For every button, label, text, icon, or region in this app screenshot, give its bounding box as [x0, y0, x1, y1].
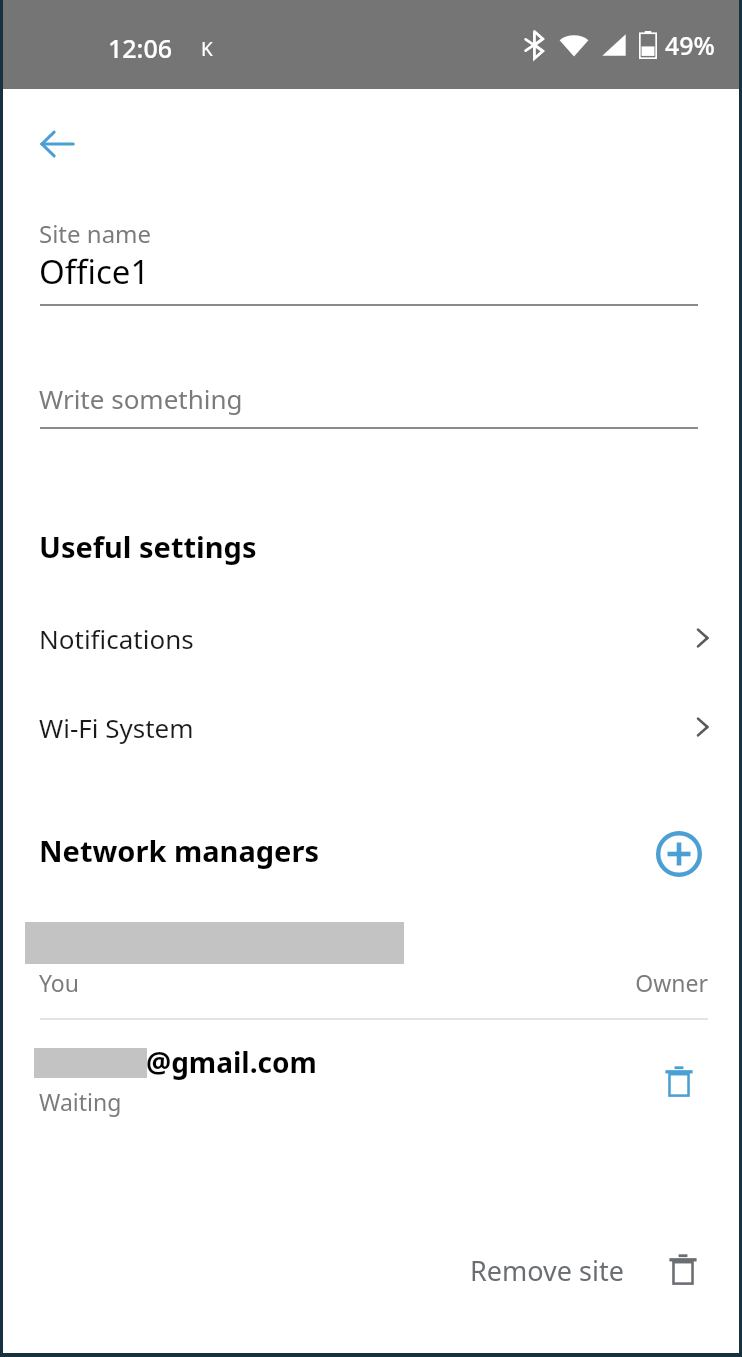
button[interactable]: Remove site: [458, 1237, 712, 1303]
button[interactable]: Delete manager: [648, 1051, 710, 1113]
button[interactable]: Back: [22, 109, 92, 179]
staticText: Office1: [39, 249, 150, 294]
staticText: Owner: [468, 967, 708, 998]
button[interactable]: Notifications: [3, 607, 739, 669]
staticText: Notifications: [39, 621, 194, 656]
staticText: You: [39, 967, 79, 998]
button[interactable]: Add manager: [648, 823, 710, 885]
staticText: Useful settings: [39, 527, 257, 566]
staticText: 12:06: [108, 31, 173, 65]
staticText: 49%: [665, 28, 715, 62]
staticText: Network managers: [39, 831, 319, 870]
staticText: Remove site: [470, 1252, 624, 1289]
staticText: @gmail.com: [146, 1043, 317, 1081]
staticText: Write something: [39, 381, 243, 416]
staticText: Waiting: [39, 1086, 122, 1117]
staticText: Wi-Fi System: [39, 710, 194, 745]
button[interactable]: Wi-Fi System: [3, 696, 739, 758]
staticText: Κ: [201, 36, 213, 62]
staticText: Site name: [39, 217, 152, 250]
